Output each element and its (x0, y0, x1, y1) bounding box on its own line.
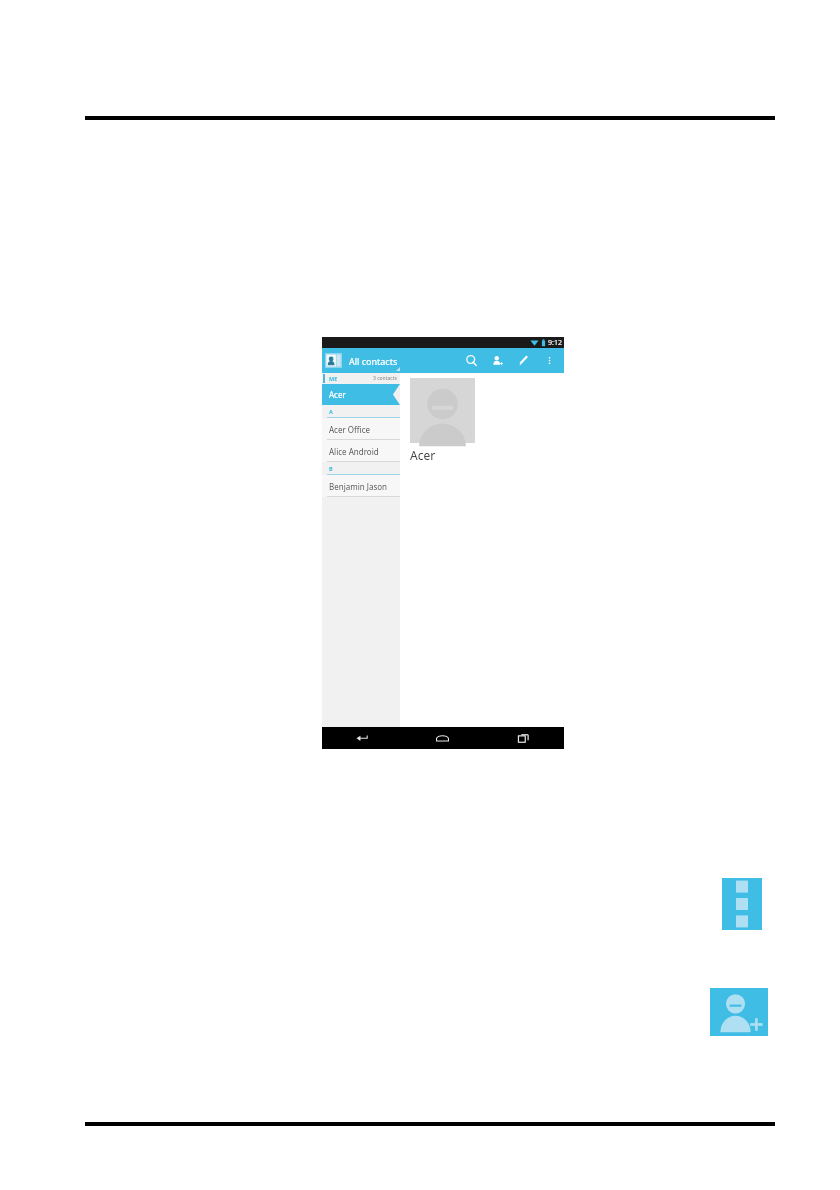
button[interactable]: Add contact (710, 988, 768, 1036)
button[interactable]: Recent apps (483, 727, 564, 749)
staticText: A (329, 408, 333, 415)
staticText: B (329, 465, 333, 472)
button[interactable]: Benjamin Jason (322, 475, 400, 497)
staticText: ME (329, 375, 338, 382)
staticText: Alice Android (329, 446, 379, 457)
button[interactable]: Contacts app (325, 353, 342, 368)
button[interactable]: Edit (510, 348, 536, 373)
button[interactable]: Add contact (484, 348, 510, 373)
staticText: All contacts (349, 355, 398, 367)
staticText: 9:12 (548, 338, 562, 348)
button[interactable]: Acer (322, 384, 400, 405)
button[interactable]: Home (402, 727, 483, 749)
button[interactable]: More options (722, 878, 762, 930)
staticText: Acer Office (329, 424, 371, 435)
button[interactable]: All contacts (349, 348, 458, 373)
button[interactable]: Alice Android (322, 440, 400, 462)
button[interactable]: More options (536, 348, 562, 373)
button[interactable]: Acer Office (322, 418, 400, 440)
staticText: 3 contacts (373, 375, 397, 382)
button[interactable]: Search (458, 348, 484, 373)
button[interactable]: Back (322, 727, 402, 749)
staticText: Benjamin Jason (329, 481, 388, 492)
staticText: Acer (329, 389, 346, 400)
staticText: Acer (410, 447, 436, 463)
